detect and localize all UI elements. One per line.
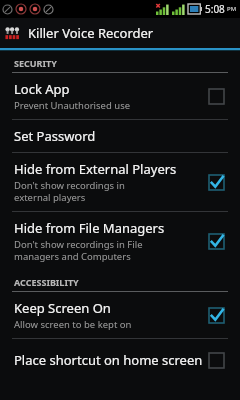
button[interactable]: Disabled [202,346,230,374]
staticText: Lock App [14,80,70,98]
staticText: ACCESSIBILITY [14,276,79,288]
staticText: Allow screen to be kept on [14,318,132,331]
staticText: PM [227,5,237,13]
staticText: Killer Voice Recorder [28,24,154,42]
button[interactable]: Lock App [0,73,240,119]
button[interactable]: Place shortcut on home screen [0,339,240,381]
button[interactable]: Enabled [202,168,230,196]
staticText: SECURITY [14,57,57,69]
button[interactable]: Enabled [202,301,230,329]
staticText: Keep Screen On [14,299,111,317]
button[interactable]: Hide from File Managers [0,212,240,270]
staticText: 5:08 [205,2,225,16]
button[interactable]: Hide from External Players [0,153,240,211]
button[interactable]: Disabled [202,82,230,110]
button[interactable]: Enabled [202,227,230,255]
staticText: Don't show recordings in external player… [14,179,125,204]
button[interactable]: Keep Screen On [0,292,240,338]
staticText: Don't show recordings in File managers a… [14,238,143,263]
staticText: Place shortcut on home screen [14,351,202,369]
staticText: Set Password [14,127,96,145]
staticText: Hide from File Managers [14,219,165,237]
staticText: Hide from External Players [14,160,177,178]
button[interactable]: Set Password [0,120,240,152]
staticText: Prevent Unauthorised use [14,99,131,112]
